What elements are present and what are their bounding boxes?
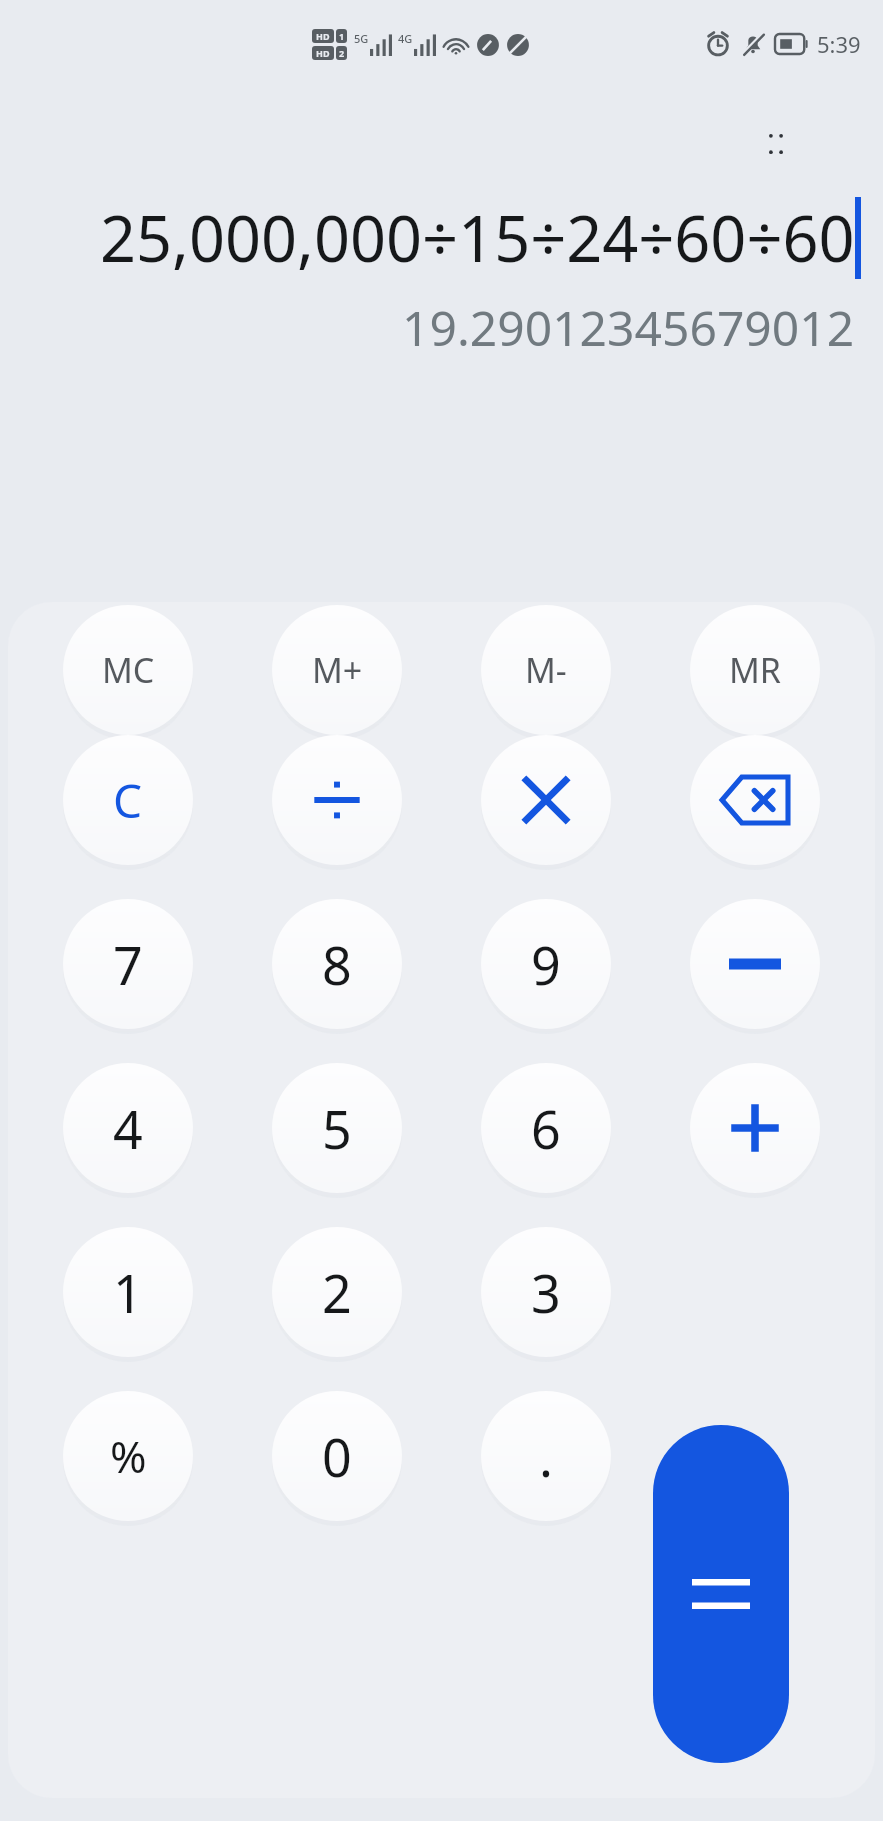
button[interactable]: Backspace <box>690 735 820 865</box>
staticText: 8 <box>322 929 352 1000</box>
staticText: HD <box>316 30 330 42</box>
button[interactable]: Equals <box>653 1425 789 1763</box>
staticText: HD <box>316 47 330 59</box>
staticText: M+ <box>312 647 363 693</box>
button[interactable]: 3 <box>481 1227 611 1357</box>
button[interactable]: 9 <box>481 899 611 1029</box>
staticText: 5G <box>354 31 369 46</box>
button[interactable]: % <box>63 1391 193 1521</box>
staticText: M- <box>525 647 567 693</box>
button[interactable]: Multiply <box>481 735 611 865</box>
button[interactable]: 7 <box>63 899 193 1029</box>
button[interactable]: 4 <box>63 1063 193 1193</box>
staticText: 1 <box>113 1257 143 1328</box>
staticText: 19.29012345679012 <box>402 295 855 360</box>
staticText: MR <box>729 647 781 693</box>
staticText: 6 <box>531 1093 561 1164</box>
staticText: . <box>539 1421 553 1492</box>
staticText: 7 <box>113 929 143 1000</box>
button[interactable]: M+ <box>272 605 402 735</box>
button[interactable]: C <box>63 735 193 865</box>
button[interactable]: M- <box>481 605 611 735</box>
button[interactable]: MR <box>690 605 820 735</box>
button[interactable]: . <box>481 1391 611 1521</box>
staticText: 4 <box>113 1093 143 1164</box>
staticText: % <box>110 1426 147 1486</box>
staticText: 3 <box>531 1257 561 1328</box>
button[interactable]: 1 <box>63 1227 193 1357</box>
button[interactable]: 2 <box>272 1227 402 1357</box>
button[interactable]: More options <box>740 108 812 180</box>
button[interactable]: Plus <box>690 1063 820 1193</box>
staticText: 0 <box>322 1421 352 1492</box>
staticText: C <box>113 769 143 832</box>
button[interactable]: Minus <box>690 899 820 1029</box>
staticText: 5:39 <box>817 29 861 59</box>
staticText: 9 <box>531 929 561 1000</box>
button[interactable]: MC <box>63 605 193 735</box>
button[interactable]: Divide <box>272 735 402 865</box>
staticText: MC <box>102 647 155 693</box>
button[interactable]: 5 <box>272 1063 402 1193</box>
button[interactable]: 8 <box>272 899 402 1029</box>
button[interactable]: 6 <box>481 1063 611 1193</box>
staticText: 5 <box>322 1093 352 1164</box>
staticText: 4G <box>398 31 413 46</box>
staticText: 25,000,000÷15÷24÷60÷60 <box>100 195 855 281</box>
staticText: 2 <box>339 47 345 59</box>
button[interactable]: 0 <box>272 1391 402 1521</box>
staticText: 1 <box>339 30 345 42</box>
staticText: 2 <box>322 1257 352 1328</box>
